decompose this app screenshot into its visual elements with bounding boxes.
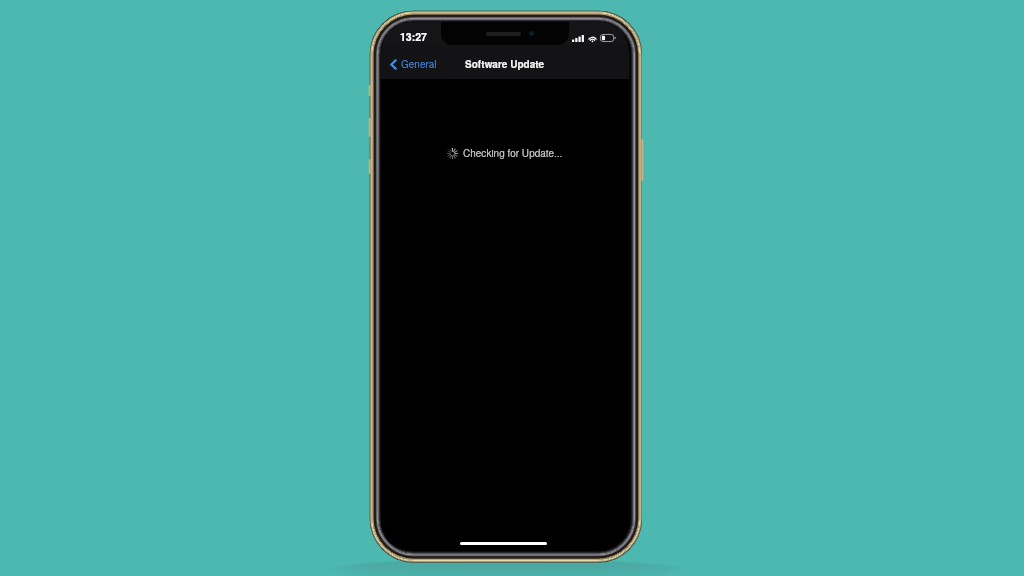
staticText: Software Update — [465, 57, 545, 71]
other: Back to General — [390, 59, 397, 70]
button[interactable]: Back to General — [381, 49, 447, 75]
staticText: General — [401, 57, 437, 71]
staticText: 13:27 — [400, 29, 427, 44]
staticText: Checking for Update... — [463, 146, 563, 160]
